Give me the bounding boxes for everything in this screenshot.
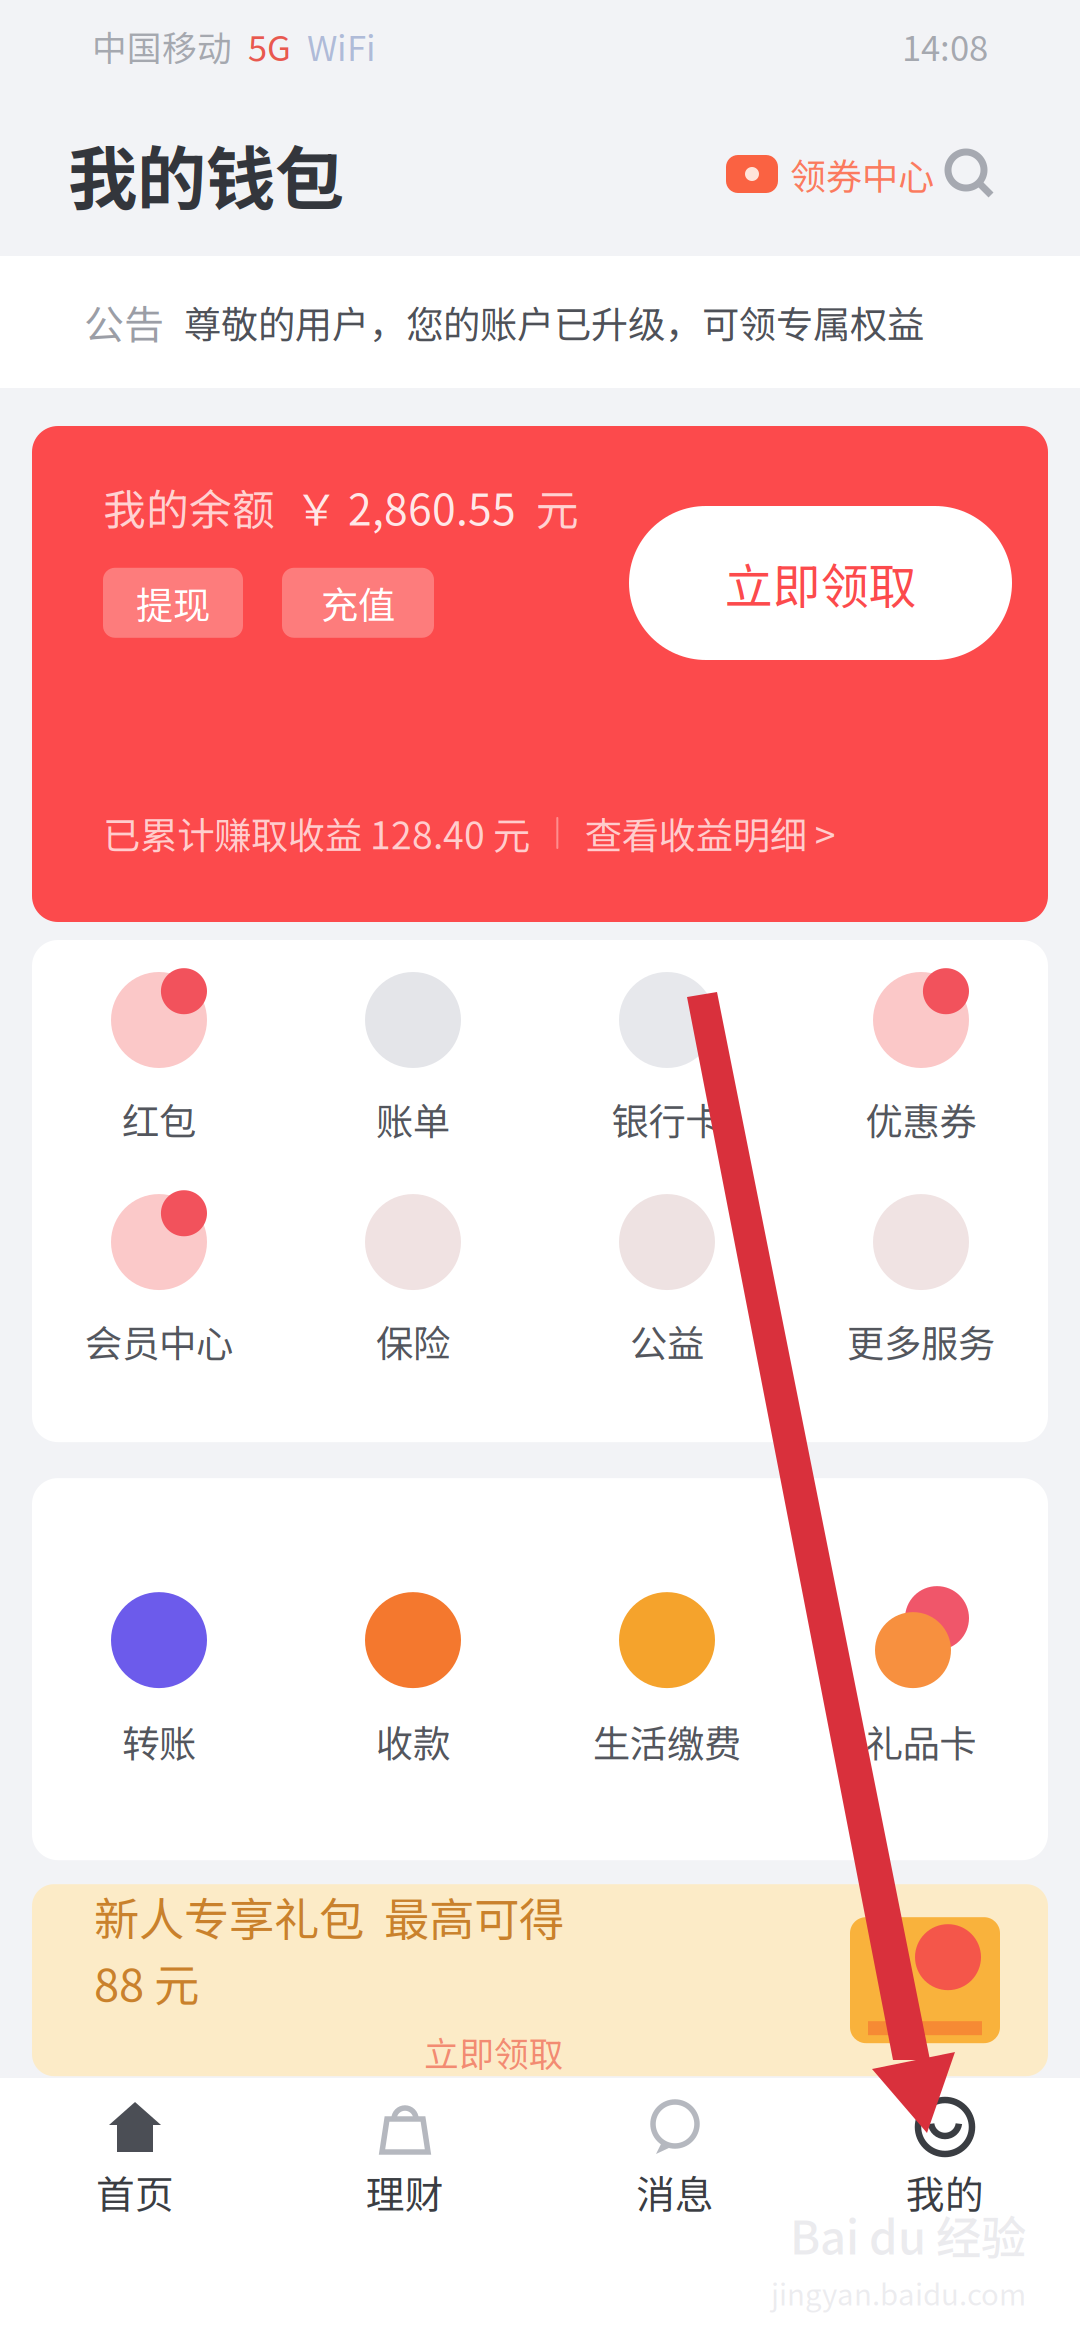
button[interactable]: 消息	[540, 2072, 810, 2340]
staticText: 立即领取	[724, 548, 916, 618]
staticText: WiFi	[291, 21, 376, 71]
staticText: 保险	[376, 1314, 450, 1368]
staticText: 账单	[376, 1092, 450, 1146]
button[interactable]: 立即领取	[629, 506, 1012, 660]
staticText: 会员中心	[85, 1314, 233, 1368]
staticText: 优惠券	[865, 1092, 976, 1146]
button[interactable]: 我的	[810, 2072, 1080, 2340]
staticText: 公告	[84, 293, 164, 351]
button[interactable]: 新人专享礼包 最高可得 88 元	[0, 1860, 1080, 2076]
button[interactable]: 首页	[0, 2072, 270, 2340]
staticText: 收款	[376, 1714, 450, 1768]
button[interactable]: 保险	[286, 1170, 540, 1392]
staticText: 更多服务	[847, 1314, 995, 1368]
staticText: 我的余额	[103, 476, 275, 538]
staticText: 领券中心	[790, 148, 934, 200]
staticText: 红包	[122, 1092, 196, 1146]
staticText: Bai du 经验	[790, 2202, 1026, 2267]
button[interactable]: 搜索	[934, 148, 996, 200]
staticText: 充值	[321, 576, 395, 630]
button[interactable]: 红包	[32, 948, 286, 1170]
button[interactable]: 账单	[286, 948, 540, 1170]
staticText: 银行卡	[611, 1092, 722, 1146]
staticText: 5G	[232, 21, 291, 71]
staticText: jingyan.baidu.com	[771, 2271, 1026, 2314]
staticText: 我的	[906, 2164, 984, 2220]
staticText: 已累计赚取收益 128.40 元	[103, 806, 530, 860]
button[interactable]: 转账	[32, 1592, 286, 1768]
staticText: 14:08	[902, 21, 988, 71]
staticText: 我的钱包	[68, 124, 344, 224]
staticText: 生活缴费	[593, 1714, 741, 1768]
button[interactable]: 更多服务	[794, 1170, 1048, 1392]
button[interactable]: 公益	[540, 1170, 794, 1392]
staticText: 查看收益明细 >	[585, 806, 836, 860]
staticText: 理财	[366, 2164, 444, 2220]
button[interactable]: 优惠券	[794, 948, 1048, 1170]
button[interactable]: 公告	[0, 256, 1080, 388]
button[interactable]: 会员中心	[32, 1170, 286, 1392]
staticText: ￥ 2,860.55	[275, 476, 516, 538]
button[interactable]: 礼品卡	[794, 1592, 1048, 1768]
staticText: 元	[516, 476, 579, 538]
staticText: 首页	[96, 2164, 174, 2220]
staticText: 公益	[630, 1314, 704, 1368]
staticText: 礼品卡	[865, 1714, 976, 1768]
staticText: 提现	[136, 576, 210, 630]
button[interactable]: 银行卡	[540, 948, 794, 1170]
staticText: 中国移动	[92, 21, 232, 71]
staticText: 尊敬的用户，您的账户已升级，可领专属权益	[184, 295, 924, 349]
staticText: 新人专享礼包 最高可得 88 元	[94, 1883, 564, 2015]
button[interactable]: 收款	[286, 1592, 540, 1768]
staticText: 转账	[122, 1714, 196, 1768]
staticText: 立即领取	[424, 2027, 564, 2077]
staticText: 消息	[636, 2164, 714, 2220]
button[interactable]: 理财	[270, 2072, 540, 2340]
button[interactable]: 领券中心	[726, 138, 934, 210]
button[interactable]: 生活缴费	[540, 1592, 794, 1768]
